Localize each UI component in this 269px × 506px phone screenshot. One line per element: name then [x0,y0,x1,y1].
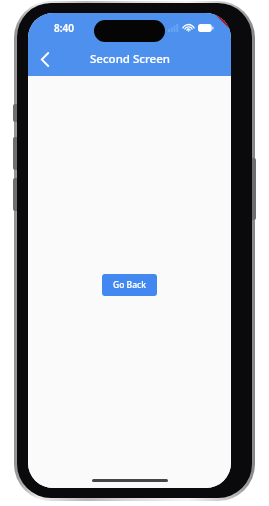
button[interactable]: Go Back [102,274,157,296]
staticText: 8:40 [54,21,74,35]
button[interactable]: Back [28,42,62,76]
staticText: DEBUG [200,13,224,17]
staticText: Second Screen [90,51,170,67]
staticText: Go Back [113,279,146,291]
